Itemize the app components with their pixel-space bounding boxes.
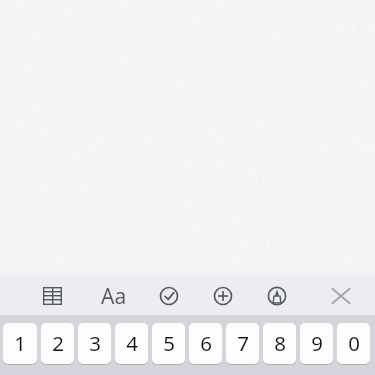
staticText: 1 <box>14 329 26 357</box>
button[interactable]: 5 <box>152 323 185 364</box>
button[interactable]: 4 <box>115 323 148 364</box>
button[interactable]: 8 <box>263 323 296 364</box>
button[interactable]: 7 <box>226 323 259 364</box>
button[interactable]: Checklist <box>154 281 184 311</box>
staticText: 5 <box>163 329 175 357</box>
button[interactable]: 6 <box>189 323 222 364</box>
button[interactable]: 3 <box>78 323 111 364</box>
staticText: 3 <box>89 329 101 357</box>
button[interactable]: Close <box>326 281 356 311</box>
button[interactable]: Table <box>38 281 68 311</box>
button[interactable]: 0 <box>337 323 370 364</box>
button[interactable]: Aa <box>96 281 132 311</box>
staticText: 4 <box>126 329 138 357</box>
button[interactable]: 1 <box>3 323 37 364</box>
staticText: Aa <box>101 282 127 311</box>
button[interactable]: 9 <box>300 323 333 364</box>
staticText: 0 <box>348 329 360 357</box>
button[interactable]: Markup <box>262 281 292 311</box>
staticText: 7 <box>237 329 249 357</box>
staticText: 2 <box>52 329 64 357</box>
button[interactable]: Attach <box>208 281 238 311</box>
staticText: 9 <box>311 329 323 357</box>
button[interactable]: 2 <box>41 323 74 364</box>
staticText: 8 <box>274 329 286 357</box>
staticText: 6 <box>200 329 212 357</box>
